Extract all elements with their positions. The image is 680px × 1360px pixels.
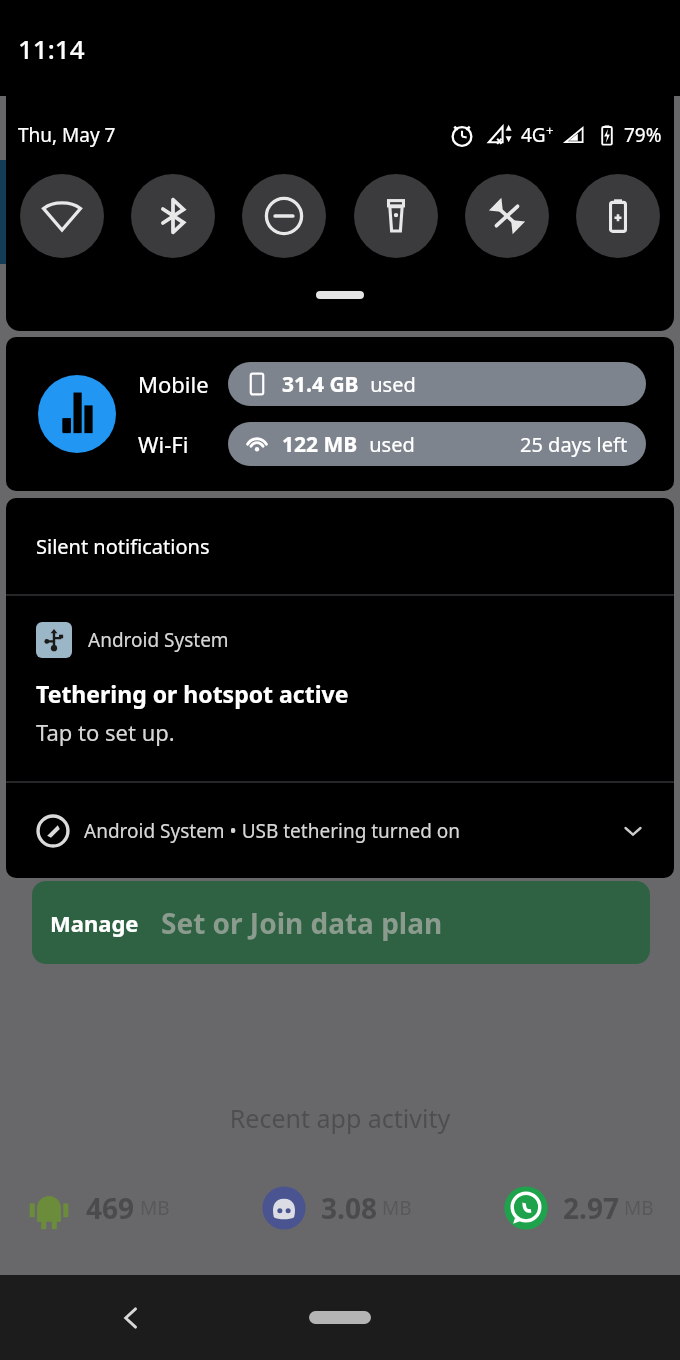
button[interactable]: Silent notifications xyxy=(6,498,674,594)
staticText: MB xyxy=(382,1195,412,1221)
staticText: Android System xyxy=(88,627,229,653)
button[interactable]: 122 MB xyxy=(228,422,646,466)
staticText: Mobile xyxy=(138,369,209,399)
staticText: 469 xyxy=(86,1189,135,1227)
staticText: MB xyxy=(624,1195,654,1221)
staticText: 31.4 GB xyxy=(282,370,359,399)
button[interactable]: Manage xyxy=(32,881,650,964)
button[interactable]: Mobile xyxy=(6,337,674,491)
button[interactable]: Home xyxy=(309,1311,371,1324)
staticText: 2.97 xyxy=(563,1189,619,1227)
staticText: 25 days left xyxy=(520,431,628,458)
button[interactable]: Android System xyxy=(6,596,674,781)
staticText: Set or Join data plan xyxy=(161,904,443,942)
staticText: Thu, May 7 xyxy=(18,122,116,148)
staticText: Silent notifications xyxy=(36,533,210,560)
button[interactable]: Expand xyxy=(618,816,648,846)
button[interactable]: Flashlight xyxy=(354,174,438,258)
staticText: Tethering or hotspot active xyxy=(36,678,349,709)
staticText: MB xyxy=(140,1195,170,1221)
button[interactable]: 31.4 GB xyxy=(228,362,646,406)
staticText: Wi-Fi xyxy=(138,429,189,459)
staticText: 122 MB xyxy=(282,430,358,459)
button[interactable]: Android System • USB tethering turned on xyxy=(6,783,674,878)
staticText: 3.08 xyxy=(321,1189,377,1227)
staticText: used xyxy=(365,371,416,398)
button[interactable]: Back xyxy=(112,1299,150,1337)
button[interactable]: Auto rotate xyxy=(465,174,549,258)
staticText: Tap to set up. xyxy=(36,717,175,747)
staticText: Android System • USB tethering turned on xyxy=(84,818,461,844)
staticText: Manage xyxy=(50,908,139,938)
button[interactable]: 2.97 xyxy=(503,1185,654,1231)
button[interactable]: Bluetooth xyxy=(131,174,215,258)
button[interactable]: Battery saver xyxy=(576,174,660,258)
button[interactable]: Do not disturb xyxy=(242,174,326,258)
staticText: 79% xyxy=(624,122,662,148)
button[interactable]: 3.08 xyxy=(261,1185,412,1231)
staticText: Recent app activity xyxy=(0,1101,680,1135)
staticText: used xyxy=(364,431,415,458)
button[interactable]: 469 xyxy=(26,1185,170,1231)
staticText: 4G xyxy=(521,122,546,148)
staticText: + xyxy=(546,121,554,139)
button[interactable]: Wi-Fi xyxy=(20,174,104,258)
staticText: 11:14 xyxy=(18,31,85,66)
